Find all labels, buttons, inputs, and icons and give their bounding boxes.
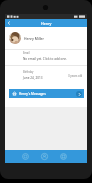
staticText: 3 years old [68, 74, 83, 78]
staticText: Henry [41, 21, 52, 26]
button[interactable]: Henry Miller [5, 27, 87, 49]
staticText: Henry Miller [24, 36, 44, 41]
staticText: No email yet. Click to add one. [23, 57, 67, 61]
button[interactable]: Email [5, 50, 87, 65]
staticText: Birthday [23, 70, 34, 74]
staticText: Henry's Messages [19, 92, 46, 96]
staticText: Email [23, 51, 30, 55]
button[interactable]: Account [40, 152, 49, 161]
button[interactable]: Birthday [5, 66, 87, 81]
staticText: June 24, 2013 [23, 76, 43, 80]
button[interactable]: Henry's Messages [9, 89, 84, 98]
button[interactable]: Open messages [76, 91, 82, 97]
button[interactable]: Camera [21, 152, 30, 161]
button[interactable]: Back [5, 19, 13, 27]
button[interactable]: Edit [59, 152, 68, 161]
